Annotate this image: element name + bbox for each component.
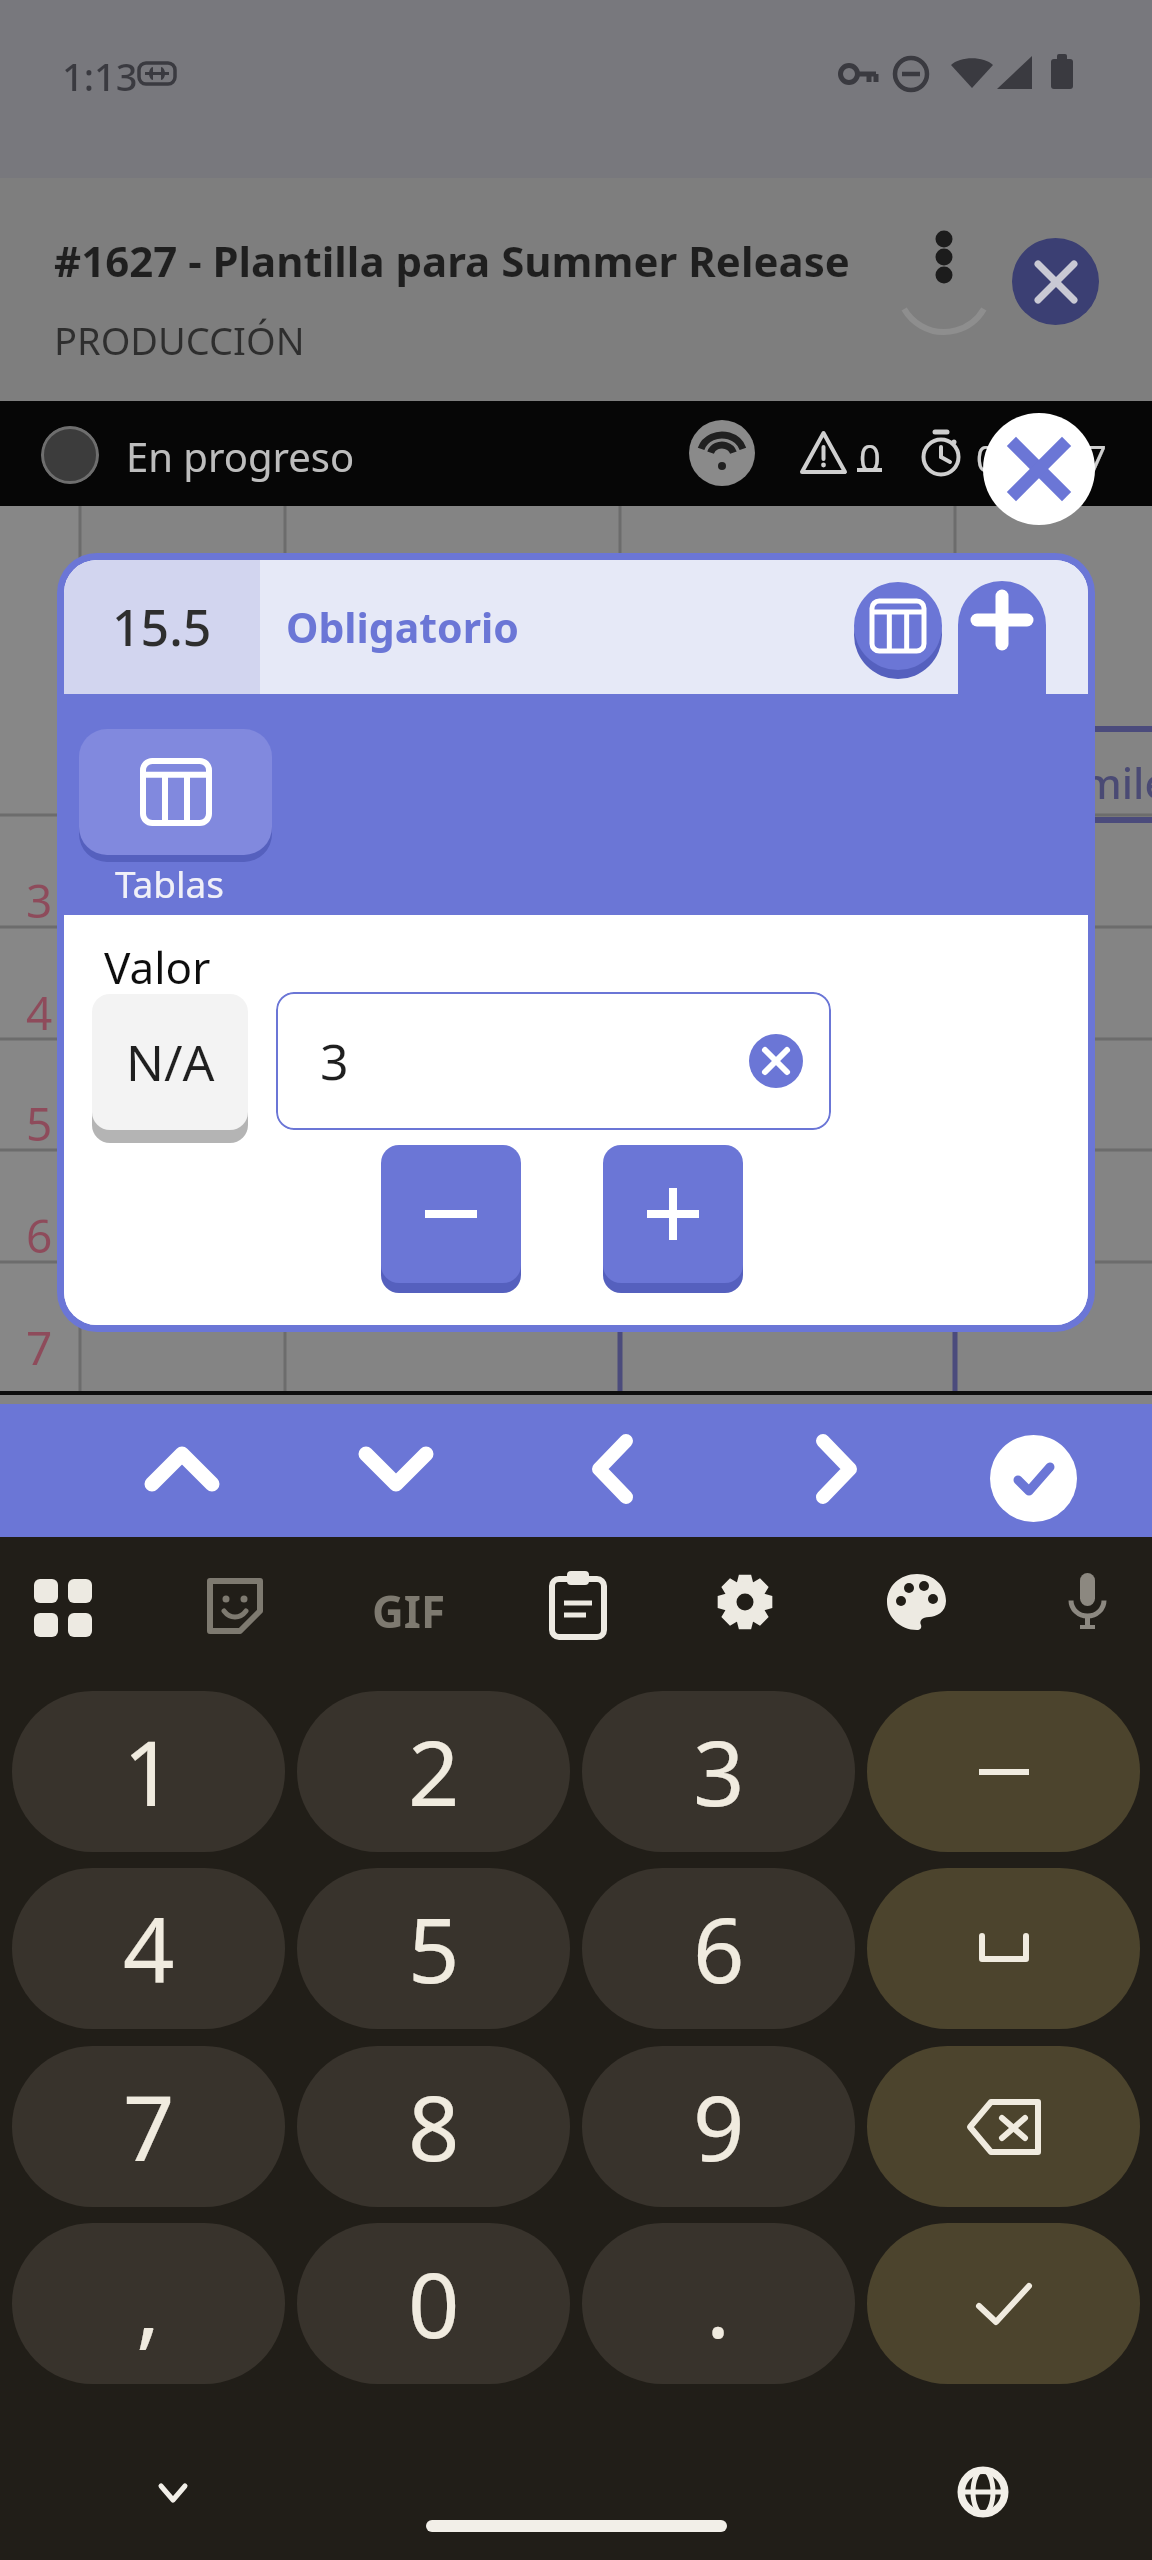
button[interactable]: N/A xyxy=(92,994,248,1130)
button[interactable]: Hide keyboard xyxy=(123,2443,223,2543)
button[interactable]: 6 xyxy=(582,1868,855,2029)
button[interactable]: 2 xyxy=(297,1691,570,1852)
button[interactable]: Confirm xyxy=(990,1435,1077,1522)
button[interactable]: Increase xyxy=(603,1145,743,1283)
staticText: En progreso xyxy=(126,429,355,483)
staticText: PRODUCCIÓN xyxy=(54,314,305,366)
staticText: 7 xyxy=(26,1316,53,1379)
button[interactable]: Up xyxy=(112,1404,252,1534)
button[interactable]: Wifi xyxy=(689,420,755,486)
staticText: 0 xyxy=(976,434,997,483)
button[interactable]: Status xyxy=(41,426,99,484)
staticText: #1627 - Plantilla para Summer Release xyxy=(54,232,850,289)
button[interactable]: , xyxy=(12,2223,285,2384)
staticText: 4 xyxy=(123,1887,175,2010)
button[interactable]: More options xyxy=(885,198,1003,316)
staticText: 6 xyxy=(693,1887,745,2010)
staticText: 3 xyxy=(693,1710,745,1833)
button[interactable]: Backspace xyxy=(867,2046,1140,2207)
button[interactable]: Clear xyxy=(749,1034,803,1088)
staticText: 7 xyxy=(123,2065,175,2188)
button[interactable]: 7 xyxy=(12,2046,285,2207)
staticText: 3 xyxy=(320,1027,349,1095)
staticText: 2 xyxy=(408,1710,460,1833)
button[interactable]: 5 xyxy=(297,1868,570,2029)
staticText: 5 xyxy=(26,1092,53,1155)
staticText: 3 xyxy=(26,869,53,932)
staticText: 1:13 xyxy=(62,50,138,102)
staticText: mile xyxy=(1082,754,1152,811)
button[interactable]: Close xyxy=(983,413,1095,525)
button[interactable]: 1 xyxy=(12,1691,285,1852)
staticText: 7 xyxy=(1086,434,1107,483)
button[interactable]: Space xyxy=(867,1868,1140,2029)
button[interactable]: 9 xyxy=(582,2046,855,2207)
staticText: , xyxy=(136,2242,161,2365)
button[interactable]: Minus xyxy=(867,1691,1140,1852)
button[interactable]: 8 xyxy=(297,2046,570,2207)
staticText: Valor xyxy=(104,937,211,997)
button[interactable]: Add xyxy=(958,581,1046,701)
button[interactable]: Decrease xyxy=(381,1145,521,1283)
staticText: 0 xyxy=(408,2242,460,2365)
button[interactable]: . xyxy=(582,2223,855,2384)
staticText: Obligatorio xyxy=(286,599,519,655)
button[interactable]: 15.5 xyxy=(64,560,260,694)
button[interactable]: Tablas xyxy=(79,729,272,855)
button[interactable]: 3 xyxy=(582,1691,855,1852)
staticText: N/A xyxy=(126,1028,215,1096)
staticText: 9 xyxy=(693,2065,745,2188)
staticText: 1 xyxy=(123,1710,175,1833)
button[interactable]: Next xyxy=(765,1404,905,1534)
button[interactable]: Previous xyxy=(544,1404,684,1534)
staticText: Tablas xyxy=(73,858,266,908)
button[interactable]: 0 xyxy=(297,2223,570,2384)
button[interactable]: Change language xyxy=(933,2442,1033,2542)
button[interactable]: 4 xyxy=(12,1868,285,2029)
staticText: GIF xyxy=(372,1581,446,1641)
button[interactable]: 3 xyxy=(276,992,831,1130)
staticText: 4 xyxy=(26,981,53,1044)
staticText: 15.5 xyxy=(112,593,212,661)
button[interactable]: Down xyxy=(326,1404,466,1534)
button[interactable]: Tables xyxy=(854,582,942,670)
staticText: 6 xyxy=(26,1204,53,1267)
staticText: 8 xyxy=(408,2065,460,2188)
staticText: 0 xyxy=(859,431,881,483)
button[interactable]: Close screen xyxy=(1012,238,1099,325)
button[interactable]: Obligatorio xyxy=(260,560,1088,694)
staticText: . xyxy=(706,2242,731,2365)
staticText: 5 xyxy=(408,1887,460,2010)
button[interactable]: Enter xyxy=(867,2223,1140,2384)
